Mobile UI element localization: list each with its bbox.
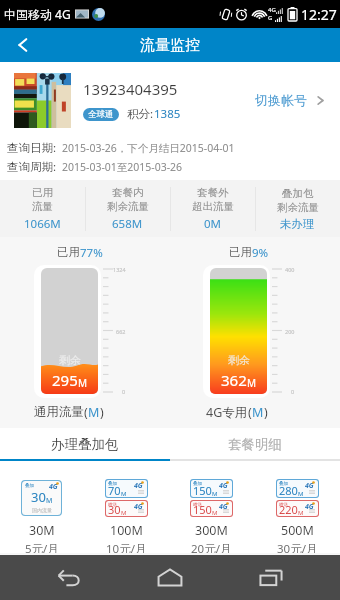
staticText: 4G专用 — [206, 404, 248, 421]
staticText: 4G — [219, 502, 228, 509]
button[interactable]: 套餐内 — [85, 180, 170, 237]
staticText: 400 — [285, 266, 295, 273]
button[interactable]: Back — [0, 28, 46, 62]
button[interactable]: 叠加 — [276, 479, 319, 553]
staticText: 赠送 — [279, 502, 288, 508]
staticText: ) — [264, 404, 268, 421]
button[interactable]: 叠加 — [21, 479, 62, 553]
staticText: 已用 — [229, 245, 252, 259]
staticText: 5元/月 — [25, 541, 59, 553]
staticText: 国内流量 — [32, 507, 52, 513]
staticText: 150 — [193, 502, 212, 516]
staticText: 662 — [116, 328, 126, 335]
staticText: 0M — [204, 216, 222, 232]
staticText: 剩余流量 — [277, 201, 319, 214]
staticText: 1385 — [154, 106, 181, 122]
staticText: 4G — [134, 481, 143, 488]
staticText: 30M — [29, 522, 55, 539]
staticText: 30元/月 — [277, 541, 318, 553]
staticText: 20元/月 — [191, 541, 232, 553]
staticText: 套餐明细 — [228, 436, 282, 453]
staticText: 切换帐号 — [255, 92, 307, 108]
staticText: 0 — [291, 388, 295, 395]
staticText: 剩余 — [59, 353, 81, 367]
staticText: 剩余流量 — [107, 200, 149, 213]
staticText: M — [252, 404, 264, 421]
staticText: 套餐外 — [197, 186, 229, 199]
staticText: 4G — [305, 481, 314, 488]
staticText: 10元/月 — [106, 541, 147, 553]
staticText: 叠加 — [279, 481, 288, 487]
button[interactable]: 办理叠加包 — [0, 430, 170, 459]
staticText: M — [298, 509, 304, 516]
staticText: 已用 — [32, 186, 53, 199]
staticText: M — [212, 490, 218, 497]
staticText: 通用流量 — [34, 404, 84, 420]
staticText: ) — [100, 404, 101, 421]
staticText: 叠加 — [25, 483, 34, 489]
staticText: 77% — [80, 245, 103, 261]
staticText: 赠送 — [108, 502, 117, 508]
staticText: 超出流量 — [192, 200, 234, 213]
staticText: M — [46, 496, 53, 506]
staticText: 362 — [221, 370, 247, 390]
staticText: M — [88, 404, 100, 421]
staticText: 150 — [193, 483, 212, 497]
staticText: 9% — [252, 245, 269, 261]
button[interactable]: 切换帐号 — [251, 88, 331, 112]
staticText: 2015-03-01至2015-03-26 — [62, 160, 183, 174]
staticText: 查询日期: — [7, 140, 57, 156]
staticText: 200 — [285, 328, 295, 335]
staticText: 已用 — [57, 245, 80, 259]
staticText: G — [268, 14, 273, 22]
staticText: 0 — [122, 388, 126, 395]
staticText: 30 — [108, 502, 121, 516]
button[interactable]: Home — [138, 555, 202, 600]
staticText: 查询周期: — [7, 159, 57, 175]
staticText: 全球通 — [88, 109, 114, 120]
staticText: 叠加 — [108, 481, 117, 487]
button[interactable]: 叠加 — [105, 479, 148, 553]
staticText: 流量监控 — [140, 36, 200, 55]
staticText: M — [298, 490, 304, 497]
button[interactable]: 已用 — [0, 180, 85, 237]
staticText: 叠加包 — [282, 187, 314, 200]
staticText: M — [247, 376, 257, 390]
button[interactable]: 叠加 — [190, 479, 233, 553]
staticText: 300M — [195, 522, 228, 539]
staticText: 658M — [112, 216, 143, 232]
staticText: 1324 — [113, 266, 126, 273]
staticText: 280 — [279, 483, 298, 497]
staticText: M — [78, 376, 88, 390]
staticText: 4G — [49, 482, 58, 489]
staticText: 办理叠加包 — [51, 436, 119, 453]
staticText: 2015-03-26，下个月结日2015-04-01 — [62, 141, 235, 155]
staticText: 30 — [31, 488, 46, 506]
staticText: 赠送 — [193, 502, 202, 508]
staticText: 70 — [108, 483, 121, 497]
staticText: 未办理 — [280, 217, 315, 231]
staticText: 220 — [279, 502, 298, 516]
staticText: 4G — [134, 502, 143, 509]
staticText: M — [212, 509, 218, 516]
staticText: 500M — [281, 522, 314, 539]
staticText: 中国移动 4G — [4, 6, 71, 22]
staticText: 12:27 — [301, 5, 337, 24]
button[interactable]: 套餐外 — [170, 180, 255, 237]
button[interactable]: Back — [37, 555, 101, 600]
staticText: M — [121, 490, 127, 497]
staticText: ( — [248, 404, 252, 421]
button[interactable]: Recents — [239, 555, 303, 600]
staticText: 295 — [52, 370, 78, 390]
button[interactable]: 叠加包 — [255, 180, 340, 237]
staticText: 流量 — [32, 200, 53, 213]
staticText: 4G — [305, 502, 314, 509]
staticText: 13923404395 — [83, 79, 178, 99]
staticText: 4G — [268, 6, 276, 14]
staticText: ( — [84, 404, 88, 421]
staticText: 积分: — [127, 106, 154, 122]
staticText: 1066M — [24, 216, 61, 232]
staticText: 100M — [110, 522, 143, 539]
button[interactable]: 套餐明细 — [170, 430, 340, 459]
staticText: 套餐内 — [112, 186, 144, 199]
